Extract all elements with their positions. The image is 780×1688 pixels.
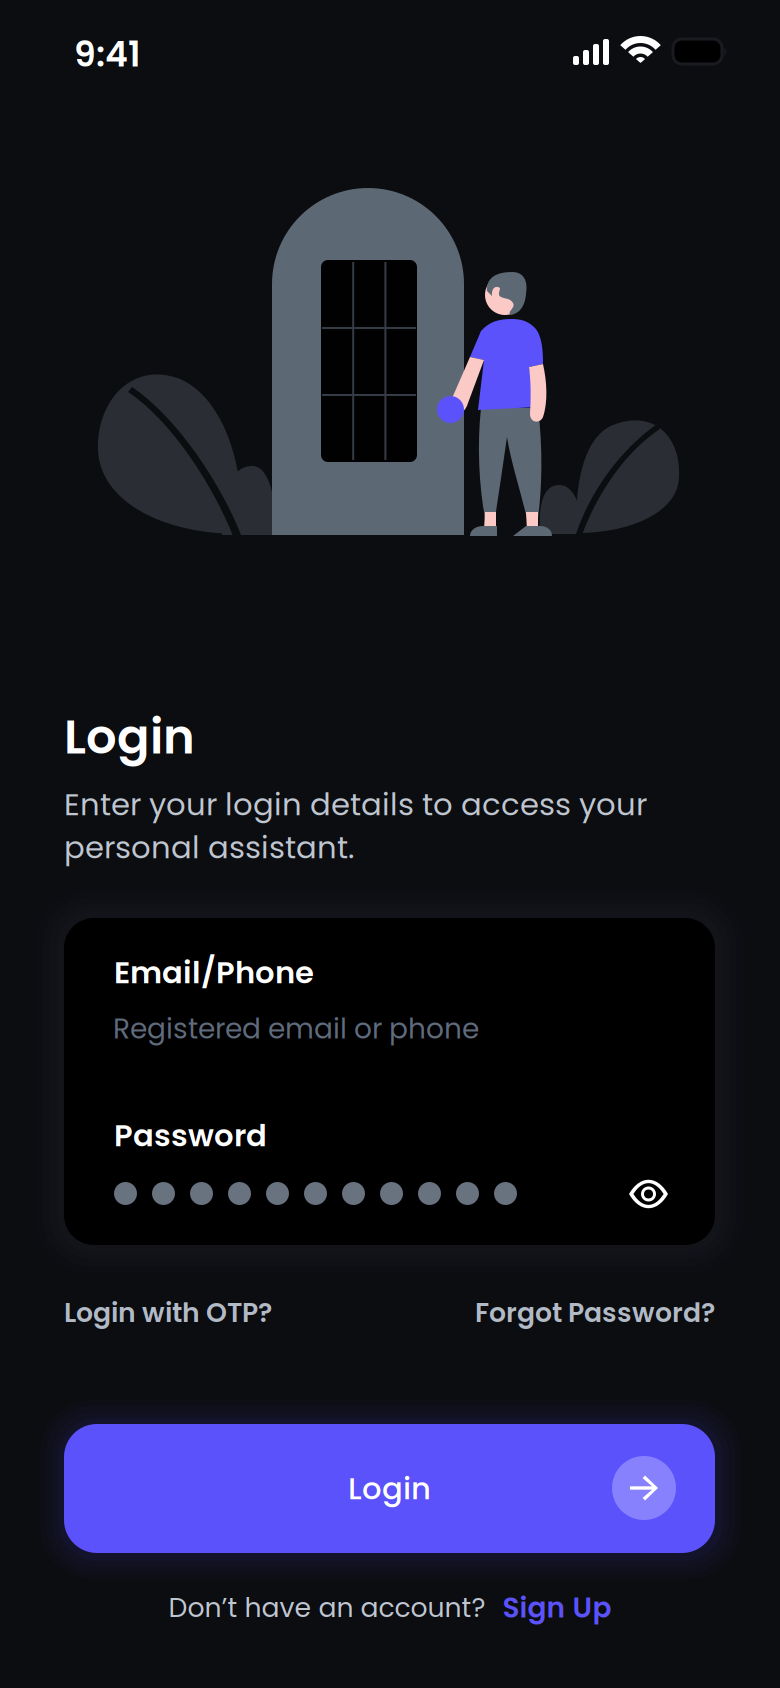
staticText: Login <box>64 703 195 770</box>
staticText: Enter your login details to access your … <box>64 783 647 869</box>
staticText: 9:41 <box>74 30 141 78</box>
staticText: Sign Up <box>502 1588 611 1627</box>
button[interactable]: Sign Up <box>502 1588 611 1627</box>
button[interactable]: Forgot Password? <box>475 1294 715 1331</box>
button[interactable]: Show password <box>619 1171 678 1217</box>
staticText: Login <box>348 1467 431 1510</box>
staticText: Forgot Password? <box>475 1294 715 1331</box>
button[interactable]: Login <box>64 1424 715 1553</box>
staticText: Registered email or phone <box>113 1009 479 1048</box>
staticText: Login with OTP? <box>64 1294 272 1331</box>
staticText: Email/Phone <box>114 951 314 994</box>
staticText: Password <box>114 1114 267 1157</box>
staticText: Don’t have an account? <box>168 1589 485 1626</box>
button[interactable]: Login with OTP? <box>64 1294 272 1331</box>
